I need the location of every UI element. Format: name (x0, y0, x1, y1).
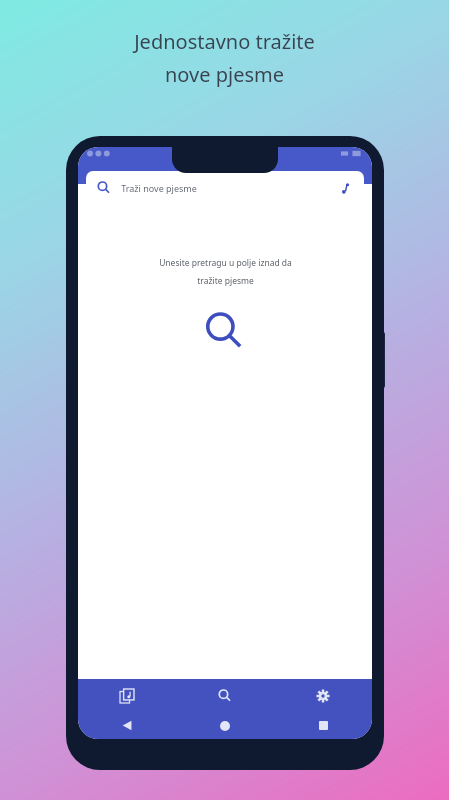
button[interactable]: Settings (274, 679, 372, 712)
staticText: Jednostavno tražite (134, 28, 315, 55)
staticText: Traži nove pjesme (121, 182, 197, 194)
button[interactable]: Traži nove pjesme (86, 171, 364, 204)
button[interactable]: Home (176, 712, 274, 739)
button[interactable]: Library (78, 679, 176, 712)
staticText: tražite pjesme (197, 275, 254, 287)
staticText: Unesite pretragu u polje iznad da (159, 257, 292, 269)
button[interactable]: Back (78, 712, 176, 739)
staticText: nove pjesme (165, 61, 284, 88)
button[interactable]: Music note (335, 179, 353, 197)
button[interactable]: Search (176, 679, 274, 712)
button[interactable]: Recents (274, 712, 372, 739)
